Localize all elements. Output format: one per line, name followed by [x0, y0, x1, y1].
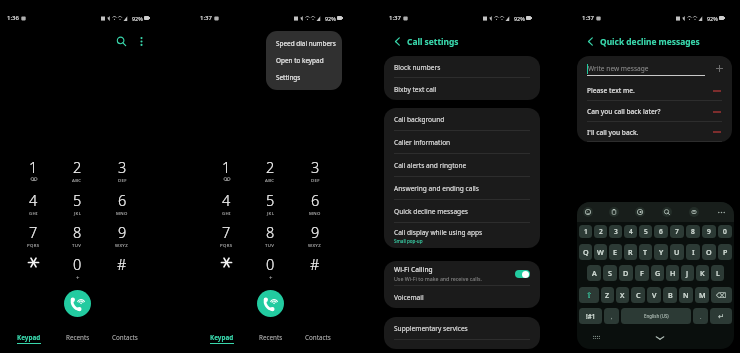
button[interactable]: Bixby text call [384, 78, 540, 100]
button[interactable]: Can you call back later? [577, 101, 732, 122]
button[interactable]: D [619, 265, 633, 281]
button[interactable]: . [693, 308, 708, 324]
button[interactable]: L [711, 265, 724, 281]
button[interactable]: Recents [259, 333, 283, 342]
button[interactable]: Hide keyboard [653, 331, 666, 344]
button[interactable]: U [670, 244, 684, 260]
button[interactable]: Search [111, 31, 131, 51]
button[interactable]: 1 [579, 225, 592, 238]
button[interactable]: , [604, 308, 619, 324]
button[interactable]: GIF [635, 207, 645, 217]
button[interactable]: 0 [718, 225, 732, 238]
button[interactable]: T [639, 244, 652, 260]
button[interactable]: 1 [208, 157, 244, 185]
button[interactable]: Open to keypad [266, 52, 342, 69]
button[interactable]: Caller information [384, 131, 540, 154]
button[interactable]: Q [579, 244, 592, 260]
button[interactable]: Settings [689, 207, 699, 217]
button[interactable]: Emoji [583, 207, 593, 217]
button[interactable]: Call background [384, 108, 540, 131]
button[interactable]: 3 [609, 225, 622, 238]
button[interactable]: 2 [59, 157, 95, 185]
button[interactable]: Back [390, 34, 404, 48]
button[interactable]: Delete I'll call you back. [712, 127, 722, 137]
button[interactable]: 5 [59, 190, 95, 218]
button[interactable]: A [587, 265, 601, 281]
button[interactable]: !#1 [579, 308, 602, 324]
button[interactable]: Back [583, 34, 597, 48]
button[interactable]: I'll call you back. [577, 122, 732, 142]
button[interactable]: M [695, 287, 709, 303]
button[interactable]: R [624, 244, 637, 260]
button[interactable]: B [663, 287, 677, 303]
button[interactable]: X [616, 287, 629, 303]
button[interactable]: More options [131, 31, 151, 51]
button[interactable]: Contacts [305, 333, 331, 342]
button[interactable]: 7 [15, 222, 51, 250]
button[interactable]: Answering and ending calls [384, 177, 540, 200]
button[interactable]: F [635, 265, 649, 281]
button[interactable]: More keyboard options [716, 207, 726, 217]
button[interactable]: 4 [15, 190, 51, 218]
button[interactable]: S [603, 265, 617, 281]
button[interactable]: Call [64, 290, 91, 317]
button[interactable]: Quick decline messages [384, 200, 540, 223]
button[interactable]: 7 [208, 222, 244, 250]
button[interactable]: Z [601, 287, 614, 303]
button[interactable]: Call [257, 290, 284, 317]
button[interactable]: 7 [670, 225, 684, 238]
button[interactable]: Add message [714, 63, 724, 73]
button[interactable]: 4 [208, 190, 244, 218]
button[interactable]: 8 [686, 225, 700, 238]
button[interactable]: 9 [702, 225, 716, 238]
button[interactable]: 5 [639, 225, 652, 238]
button[interactable]: 3 [297, 157, 333, 185]
button[interactable]: C [631, 287, 645, 303]
button[interactable]: I [686, 244, 700, 260]
button[interactable]: Delete Please text me. [712, 86, 722, 96]
button[interactable]: 6 [654, 225, 668, 238]
button[interactable]: 2 [594, 225, 607, 238]
button[interactable]: Block numbers [384, 56, 540, 78]
button[interactable]: Keypad [210, 333, 234, 344]
button[interactable]: 3 [104, 157, 140, 185]
button[interactable]: 6 [297, 190, 333, 218]
button[interactable]: W [594, 244, 607, 260]
button[interactable]: P [718, 244, 732, 260]
button[interactable]: E [609, 244, 622, 260]
button[interactable]: Recents [66, 333, 90, 342]
button[interactable]: Please text me. [577, 80, 732, 101]
button[interactable]: 6 [104, 190, 140, 218]
button[interactable]: ⇧ [579, 287, 599, 303]
button[interactable]: 4 [624, 225, 637, 238]
button[interactable]: Contacts [112, 333, 138, 342]
button[interactable]: 0 [252, 254, 288, 282]
button[interactable]: H [666, 265, 679, 281]
button[interactable]: 8 [59, 222, 95, 250]
button[interactable]: 2 [252, 157, 288, 185]
button[interactable]: O [702, 244, 716, 260]
button[interactable]: 5 [252, 190, 288, 218]
button[interactable]: Voicemail [384, 286, 540, 308]
button[interactable]: 8 [252, 222, 288, 250]
button[interactable]: Clipboard [609, 207, 619, 217]
button[interactable]: Call display while using apps [384, 223, 540, 248]
button[interactable]: ↵ [710, 308, 732, 324]
button[interactable]: 9 [297, 222, 333, 250]
button[interactable]: Delete Can you call back later? [712, 107, 722, 117]
button[interactable]: # [104, 254, 140, 282]
button[interactable]: # [297, 254, 333, 282]
button[interactable]: Keyboard layout [591, 332, 602, 343]
button[interactable]: Translate [662, 207, 672, 217]
button[interactable] [208, 254, 244, 282]
button[interactable]: Speed dial numbers [266, 35, 342, 52]
button[interactable]: 1 [15, 157, 51, 185]
button[interactable]: Call alerts and ringtone [384, 154, 540, 177]
button[interactable]: Y [654, 244, 668, 260]
button[interactable]: Supplementary services [384, 317, 540, 340]
button[interactable]: Keypad [17, 333, 41, 344]
button[interactable]: J [681, 265, 694, 281]
button[interactable]: K [696, 265, 709, 281]
button[interactable]: Wi-Fi Calling toggle [515, 270, 530, 278]
button[interactable]: V [647, 287, 661, 303]
